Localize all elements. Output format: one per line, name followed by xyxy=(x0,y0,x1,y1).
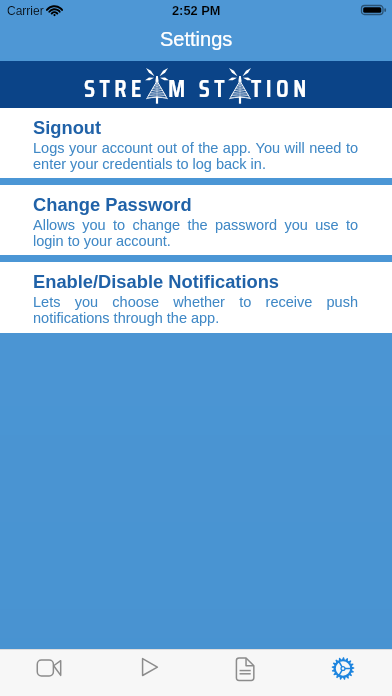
staticText: M ST xyxy=(168,69,229,108)
staticText: Logs your account out of the app. You wi… xyxy=(33,140,358,172)
button[interactable]: Documents xyxy=(196,650,294,696)
button[interactable]: Enable/Disable Notifications xyxy=(0,262,392,332)
staticText: Lets you choose whether to receive push … xyxy=(33,294,358,326)
button[interactable]: Change Password xyxy=(0,185,392,255)
staticText: Change Password xyxy=(33,194,192,214)
staticText: Carrier xyxy=(7,4,44,17)
staticText: STRE xyxy=(84,69,146,108)
staticText: 2:52 PM xyxy=(172,3,221,17)
button[interactable]: Play xyxy=(98,650,196,696)
button[interactable]: Settings xyxy=(294,650,392,696)
button[interactable]: Signout xyxy=(0,108,392,178)
staticText: Signout xyxy=(33,117,102,137)
button[interactable]: Record video xyxy=(0,650,98,696)
staticText: Allows you to change the password you us… xyxy=(33,217,358,249)
staticText: TION xyxy=(251,69,311,108)
staticText: Enable/Disable Notifications xyxy=(33,271,280,291)
staticText: Settings xyxy=(160,28,233,50)
